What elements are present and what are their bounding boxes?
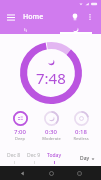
- staticText: Day: [80, 155, 90, 162]
- button[interactable]: 0:30: [36, 111, 66, 141]
- button[interactable]: Recent apps: [72, 166, 86, 180]
- button[interactable]: Sleep duration 7 hours 48 minutes: [20, 42, 82, 104]
- button[interactable]: Open navigation menu: [5, 11, 17, 23]
- button[interactable]: 7:00: [5, 111, 35, 141]
- button[interactable]: Today: [44, 150, 64, 166]
- button[interactable]: Dec 8: [4, 150, 24, 166]
- staticText: Restless: [73, 136, 89, 141]
- staticText: Deep: [15, 136, 25, 141]
- staticText: Dec 8: [7, 152, 21, 159]
- button[interactable]: Sleep: [50, 25, 101, 34]
- button[interactable]: Dec 9: [24, 150, 44, 166]
- staticText: 0:30: [45, 128, 57, 136]
- staticText: 0:18: [75, 128, 87, 136]
- staticText: Moderate: [42, 136, 61, 141]
- button[interactable]: 0:18: [66, 111, 96, 141]
- button[interactable]: Day: [78, 155, 97, 162]
- button[interactable]: Sleep tips: [68, 10, 81, 23]
- button[interactable]: Activity: [0, 25, 50, 34]
- button[interactable]: More options: [83, 10, 96, 23]
- staticText: 7:00: [14, 128, 26, 136]
- staticText: Dec 9: [27, 152, 41, 159]
- staticText: 7:48: [36, 68, 66, 88]
- staticText: Home: [23, 12, 44, 22]
- button[interactable]: Home: [44, 166, 58, 180]
- button[interactable]: Back: [15, 166, 29, 180]
- staticText: Today: [47, 152, 62, 159]
